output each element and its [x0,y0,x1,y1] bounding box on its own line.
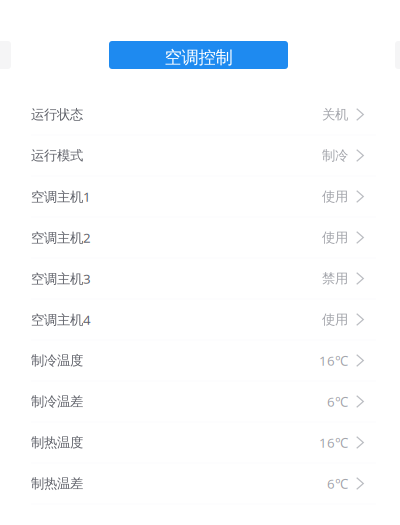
button[interactable]: 空调主机1 [0,176,400,217]
staticText: 空调主机3 [31,270,91,287]
staticText: 关机 [322,106,348,123]
staticText: 16℃ [319,434,348,451]
button[interactable]: 空调控制 [109,41,288,69]
button[interactable]: 空调主机3 [0,258,400,299]
button[interactable]: 制冷温差 [0,381,400,422]
staticText: 空调主机2 [31,229,91,246]
button[interactable]: 空调主机2 [0,217,400,258]
staticText: 禁用 [322,270,348,287]
staticText: 制热温差 [31,475,83,492]
staticText: 使用 [322,188,348,205]
staticText: 制冷温度 [31,352,83,369]
button[interactable]: 空调主机4 [0,299,400,340]
button[interactable]: 制热温差 [0,463,400,504]
button[interactable]: 制冷温度 [0,340,400,381]
button[interactable]: 制热温度 [0,422,400,463]
staticText: 空调主机4 [31,311,91,328]
staticText: 空调主机1 [31,188,91,205]
staticText: 制冷 [322,147,348,164]
staticText: 6℃ [327,475,348,492]
staticText: 制热温度 [31,434,83,451]
staticText: 6℃ [327,393,348,410]
staticText: 制冷温差 [31,393,83,410]
staticText: 运行状态 [31,106,83,123]
staticText: 使用 [322,311,348,328]
staticText: 使用 [322,229,348,246]
button[interactable]: 运行状态 [0,94,400,135]
button[interactable]: 运行模式 [0,135,400,176]
staticText: 16℃ [319,352,348,369]
staticText: 空调控制 [164,47,232,68]
staticText: 运行模式 [31,147,83,164]
